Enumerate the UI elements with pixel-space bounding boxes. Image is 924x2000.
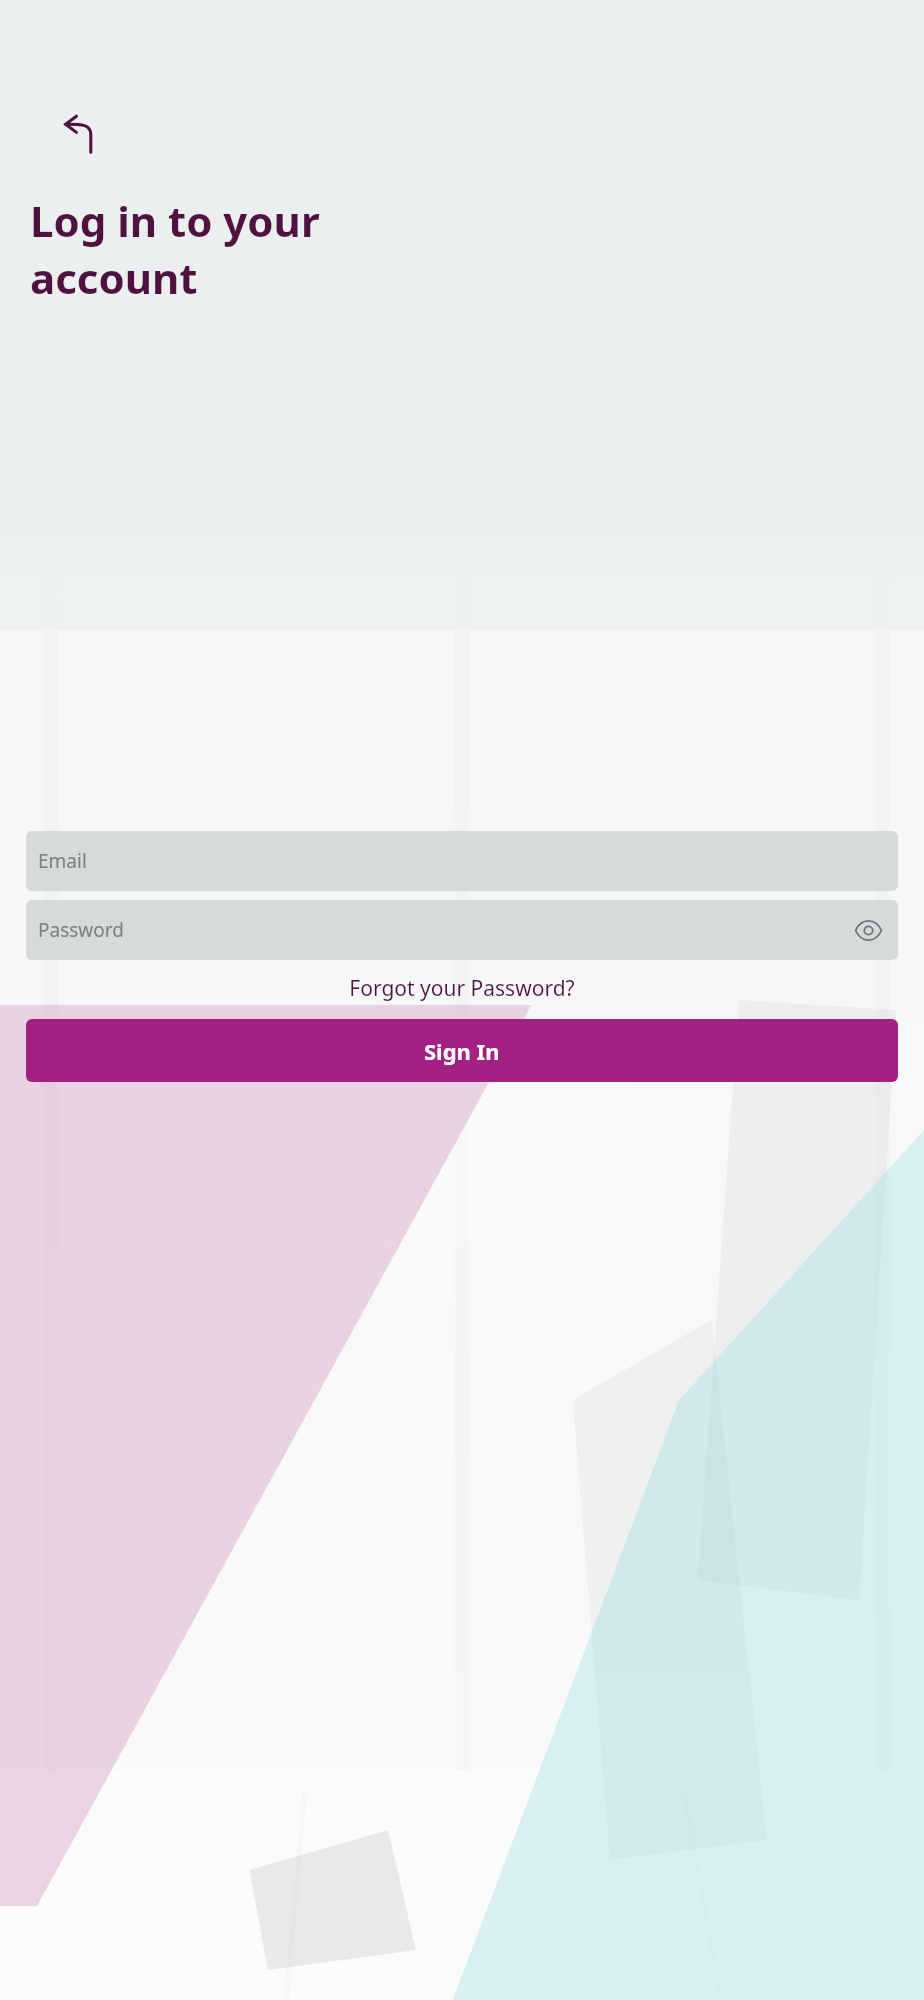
- button[interactable]: Sign In: [26, 1019, 898, 1082]
- button[interactable]: Show password: [846, 908, 890, 952]
- staticText: Log in to your: [30, 192, 320, 249]
- button[interactable]: Email: [26, 831, 898, 891]
- button[interactable]: Password: [26, 900, 898, 960]
- staticText: Email: [38, 848, 87, 874]
- button[interactable]: Back: [52, 108, 108, 164]
- staticText: Password: [38, 917, 124, 943]
- staticText: Sign In: [424, 1036, 500, 1066]
- button[interactable]: Forgot your Password?: [0, 974, 924, 1003]
- staticText: account: [30, 249, 198, 306]
- staticText: Forgot your Password?: [349, 974, 575, 1003]
